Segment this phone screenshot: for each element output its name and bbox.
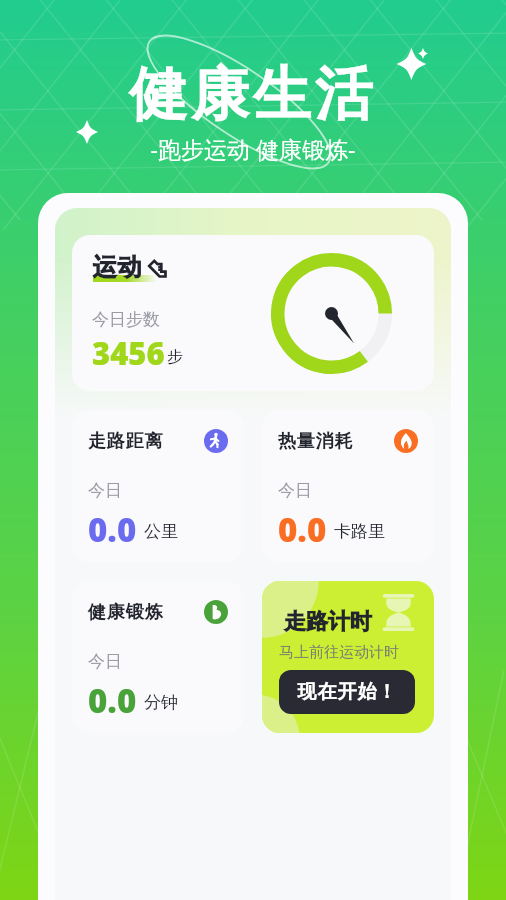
staticText: 卡路里: [334, 521, 385, 542]
staticText: 今日: [88, 651, 122, 672]
staticText: 分钟: [144, 692, 178, 713]
staticText: 今日: [278, 480, 312, 501]
staticText: 步: [167, 347, 183, 367]
staticText: 0.0: [278, 507, 327, 552]
staticText: 走路计时: [284, 608, 372, 636]
staticText: 今日步数: [92, 309, 160, 330]
staticText: 0.0: [88, 678, 137, 723]
staticText: 马上前往运动计时: [279, 643, 399, 662]
staticText: 健康生活: [0, 58, 506, 131]
staticText: 健康锻炼: [88, 601, 164, 624]
button[interactable]: 运动: [72, 235, 434, 391]
button[interactable]: 走路距离: [72, 410, 244, 562]
staticText: -跑步运动 健康锻炼-: [0, 133, 506, 164]
staticText: 今日: [88, 480, 122, 501]
staticText: 0.0: [88, 507, 137, 552]
button[interactable]: 健康锻炼: [72, 581, 244, 733]
staticText: 现在开始！: [297, 680, 397, 704]
staticText: 3456: [92, 332, 165, 374]
other: 健康锻炼: [204, 600, 228, 624]
button[interactable]: 走路计时: [262, 581, 434, 733]
button[interactable]: 热量消耗: [262, 410, 434, 562]
staticText: 热量消耗: [278, 430, 354, 453]
button[interactable]: 现在开始！: [279, 670, 415, 714]
other: 热量消耗: [394, 429, 418, 453]
staticText: 走路距离: [88, 430, 164, 453]
staticText: 公里: [144, 521, 178, 542]
staticText: 运动: [92, 252, 142, 282]
other: 走路距离: [204, 429, 228, 453]
